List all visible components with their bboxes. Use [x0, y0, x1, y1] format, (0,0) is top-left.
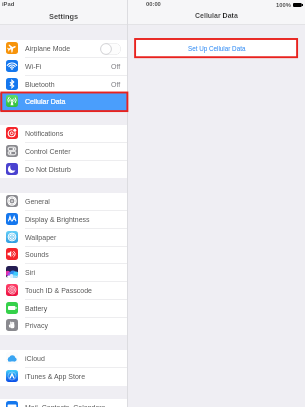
staticText: General — [25, 198, 50, 206]
button[interactable]: Bluetooth — [0, 76, 128, 94]
staticText: Battery — [25, 305, 48, 313]
staticText: Bluetooth — [25, 81, 55, 89]
button[interactable]: Display & Brightness — [0, 211, 128, 229]
staticText: iCloud — [25, 355, 45, 363]
button[interactable]: Wallpaper — [0, 229, 128, 247]
staticText: Siri — [25, 269, 36, 277]
staticText: Privacy — [25, 322, 48, 330]
button[interactable]: General — [0, 193, 128, 211]
button[interactable]: Do Not Disturb — [0, 161, 128, 179]
staticText: Settings — [49, 12, 79, 20]
button[interactable]: Sounds — [0, 246, 128, 264]
staticText: Sounds — [25, 251, 49, 259]
staticText: Off — [111, 81, 121, 89]
staticText: Notifications — [25, 130, 64, 138]
button[interactable]: iCloud — [0, 350, 128, 368]
staticText: Set Up Cellular Data — [188, 45, 246, 52]
staticText: Control Center — [25, 148, 71, 156]
staticText: iPad — [2, 1, 15, 7]
button[interactable]: Battery — [0, 300, 128, 318]
button[interactable]: Touch ID & Passcode — [0, 282, 128, 300]
staticText: 00:00 — [146, 1, 161, 7]
button[interactable]: Wi-Fi — [0, 58, 128, 76]
staticText: Display & Brightness — [25, 216, 90, 224]
staticText: Wi-Fi — [25, 63, 42, 71]
staticText: Off — [111, 63, 121, 71]
staticText: Airplane Mode — [25, 45, 71, 53]
staticText: Cellular Data — [195, 12, 238, 20]
button[interactable]: Airplane Mode toggle — [100, 43, 121, 55]
staticText: Touch ID & Passcode — [25, 287, 92, 295]
button[interactable]: Cellular Data — [0, 93, 128, 111]
staticText: Mail, Contacts, Calendars — [25, 404, 106, 407]
button[interactable]: Control Center — [0, 143, 128, 161]
staticText: Cellular Data — [25, 98, 66, 106]
button[interactable]: Notifications — [0, 125, 128, 143]
staticText: Wallpaper — [25, 234, 57, 242]
button[interactable]: iTunes & App Store — [0, 368, 128, 386]
staticText: iTunes & App Store — [25, 373, 86, 381]
staticText: Do Not Disturb — [25, 166, 71, 174]
button[interactable]: Airplane Mode — [0, 40, 128, 58]
button[interactable]: Mail, Contacts, Calendars — [0, 399, 128, 407]
staticText: 100% — [276, 2, 291, 8]
button[interactable]: Set Up Cellular Data — [135, 39, 298, 58]
button[interactable]: Siri — [0, 264, 128, 282]
button[interactable]: Privacy — [0, 317, 128, 335]
